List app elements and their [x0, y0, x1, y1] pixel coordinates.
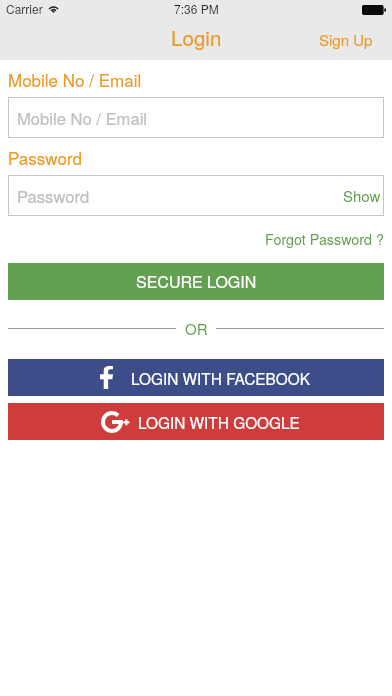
button[interactable]: Password — [8, 175, 384, 216]
staticText: Sign Up — [319, 29, 373, 50]
staticText: Password — [17, 184, 90, 208]
staticText: OR — [185, 318, 208, 339]
staticText: Login — [171, 22, 222, 51]
staticText: Mobile No / Email — [8, 67, 142, 91]
staticText: 7:36 PM — [174, 0, 219, 17]
button[interactable]: Sign Up — [313, 23, 379, 56]
button[interactable]: Show — [335, 177, 384, 214]
staticText: SECURE LOGIN — [136, 270, 257, 293]
button[interactable]: SECURE LOGIN — [8, 263, 384, 300]
staticText: Forgot Password ? — [265, 229, 384, 249]
staticText: Password — [8, 145, 82, 169]
staticText: LOGIN WITH FACEBOOK — [131, 367, 310, 389]
staticText: LOGIN WITH GOOGLE — [138, 411, 300, 433]
button[interactable]: Forgot Password ? — [265, 223, 384, 255]
staticText: Show — [343, 185, 381, 206]
button[interactable]: LOGIN WITH FACEBOOK — [8, 359, 384, 396]
button[interactable]: Mobile No / Email — [8, 97, 384, 138]
button[interactable]: LOGIN WITH GOOGLE — [8, 403, 384, 440]
staticText: Mobile No / Email — [17, 106, 148, 130]
staticText: Carrier — [6, 0, 43, 17]
